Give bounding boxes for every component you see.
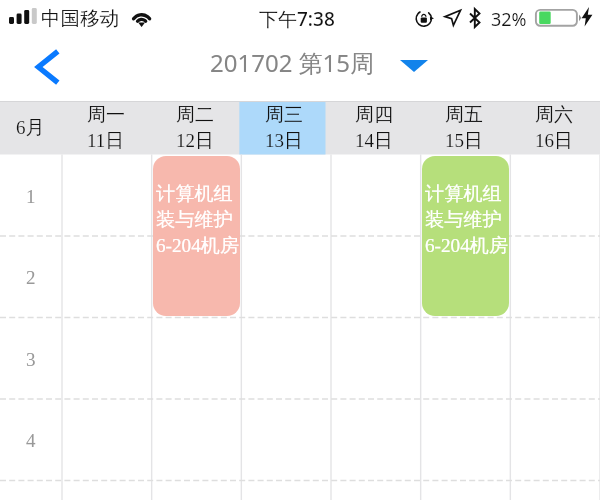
staticText: 201702 第15周 (210, 46, 375, 79)
staticText: 1 (26, 186, 36, 207)
staticText: 12日 (176, 129, 214, 153)
button[interactable]: 周三 (240, 102, 330, 155)
staticText: 周三 (265, 103, 303, 127)
staticText: 计算机组装与维护6-204机房 (156, 182, 240, 258)
button[interactable]: 周四 (330, 102, 420, 155)
staticText: 6月 (16, 116, 45, 140)
staticText: 周二 (176, 103, 214, 127)
staticText: 32% (491, 7, 527, 32)
staticText: 4 (26, 430, 36, 451)
button[interactable]: 周二 (151, 102, 240, 155)
button[interactable]: 周六 (510, 102, 600, 155)
button[interactable]: 计算机组装与维护6-204机房 (153, 156, 240, 316)
staticText: 周四 (355, 103, 393, 127)
staticText: 15日 (445, 129, 483, 153)
staticText: 计算机组装与维护6-204机房 (425, 182, 509, 258)
staticText: 2 (26, 267, 36, 288)
button[interactable]: 周五 (420, 102, 510, 155)
staticText: 14日 (355, 129, 393, 153)
staticText: 周六 (535, 103, 573, 127)
staticText: 13日 (265, 129, 303, 153)
button[interactable]: Back (29, 43, 71, 93)
staticText: 周五 (445, 103, 483, 127)
staticText: 11日 (87, 129, 125, 153)
staticText: 下午7:38 (259, 6, 335, 32)
button[interactable]: 周一 (62, 102, 151, 155)
button[interactable]: 计算机组装与维护6-204机房 (422, 156, 509, 316)
staticText: 3 (26, 349, 36, 370)
staticText: 周一 (87, 103, 125, 127)
staticText: 中国移动 (41, 6, 119, 31)
staticText: 16日 (535, 129, 573, 153)
button[interactable]: 201702 第15周 (206, 43, 436, 81)
